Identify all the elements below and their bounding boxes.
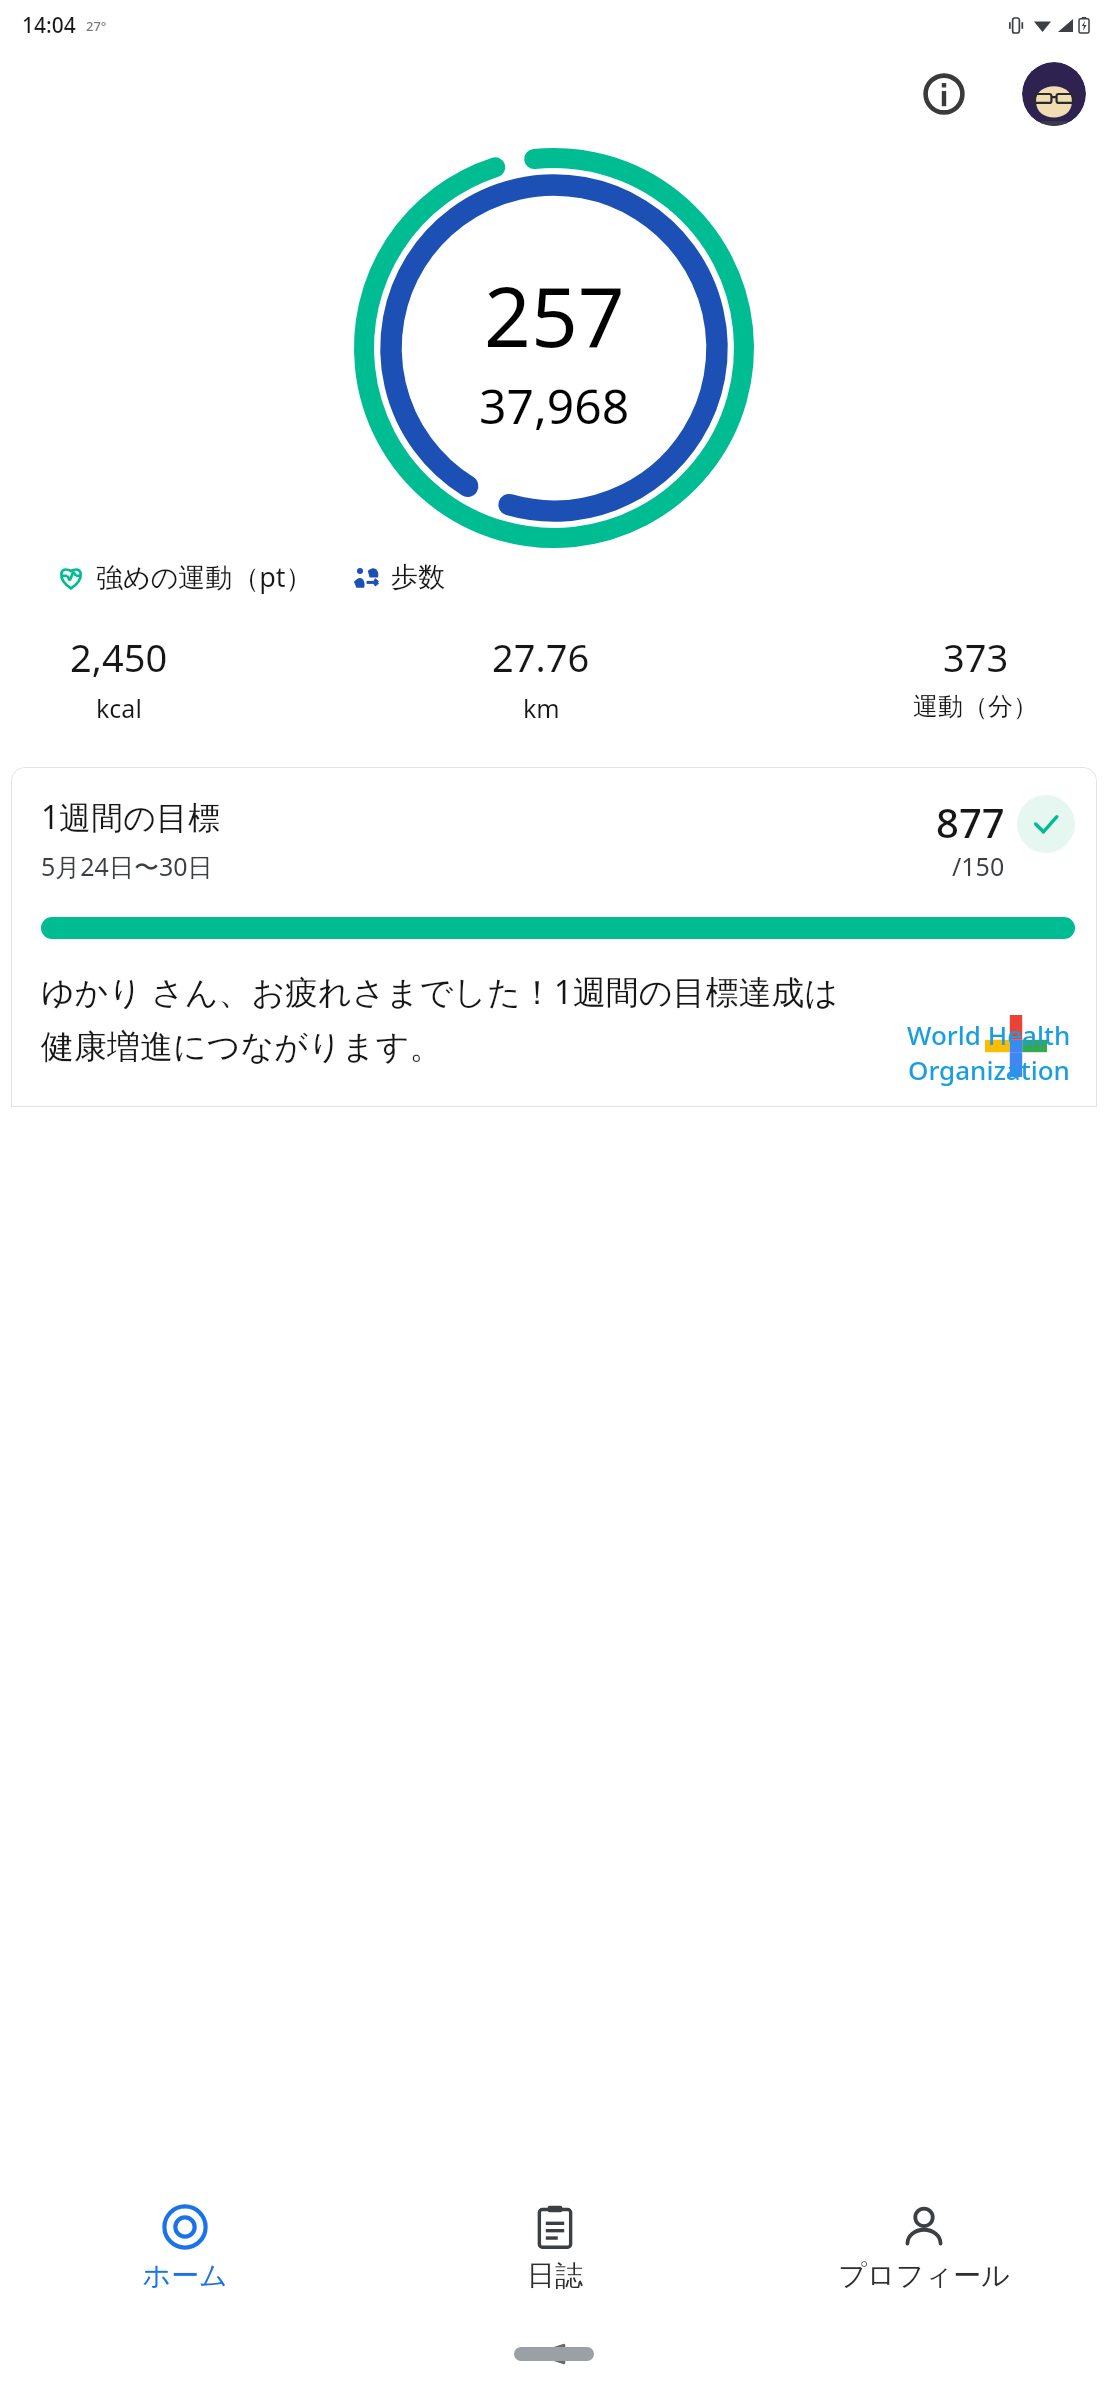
staticText: 877	[936, 795, 1005, 849]
staticText: /150	[952, 849, 1005, 883]
button[interactable]: 達成	[1017, 795, 1075, 853]
staticText: 27.76	[492, 631, 590, 683]
staticText: 14:04	[22, 11, 76, 40]
staticText: 1週間の目標	[41, 795, 221, 839]
button[interactable]: WHO	[957, 987, 1075, 1105]
button[interactable]: プロフィール画像	[1022, 62, 1086, 126]
staticText: ゆかり さん、お疲れさまでした！1週間の目標達成は健康増進につながります。	[41, 969, 868, 1067]
staticText: World Health	[907, 1017, 1071, 1052]
staticText: 37,968	[479, 373, 630, 438]
button[interactable]: 歩数	[351, 560, 445, 594]
staticText: 27°	[86, 17, 107, 35]
staticText: 日誌	[527, 2258, 583, 2293]
staticText: km	[523, 691, 560, 725]
staticText: 運動（分）	[913, 691, 1038, 722]
button[interactable]: 1週間の目標	[11, 767, 1097, 1107]
staticText: Organization	[908, 1052, 1070, 1087]
staticText: kcal	[96, 691, 142, 725]
button[interactable]: 27.76	[492, 631, 590, 725]
button[interactable]: ホーム	[0, 2198, 370, 2299]
button[interactable]: 373	[913, 631, 1038, 722]
staticText: 2,450	[70, 631, 168, 683]
staticText: 373	[943, 631, 1009, 683]
button[interactable]: プロフィール	[739, 2198, 1108, 2299]
button[interactable]: 日誌	[370, 2198, 739, 2299]
button[interactable]: 強めの運動（pt）	[56, 558, 313, 595]
staticText: プロフィール	[838, 2258, 1010, 2293]
button[interactable]: 情報	[914, 64, 974, 124]
button[interactable]: 2,450	[70, 631, 168, 725]
staticText: 強めの運動（pt）	[96, 558, 313, 595]
staticText: 歩数	[391, 560, 445, 594]
staticText: 5月24日〜30日	[41, 849, 213, 883]
staticText: 257	[484, 259, 625, 371]
staticText: ホーム	[142, 2258, 228, 2293]
